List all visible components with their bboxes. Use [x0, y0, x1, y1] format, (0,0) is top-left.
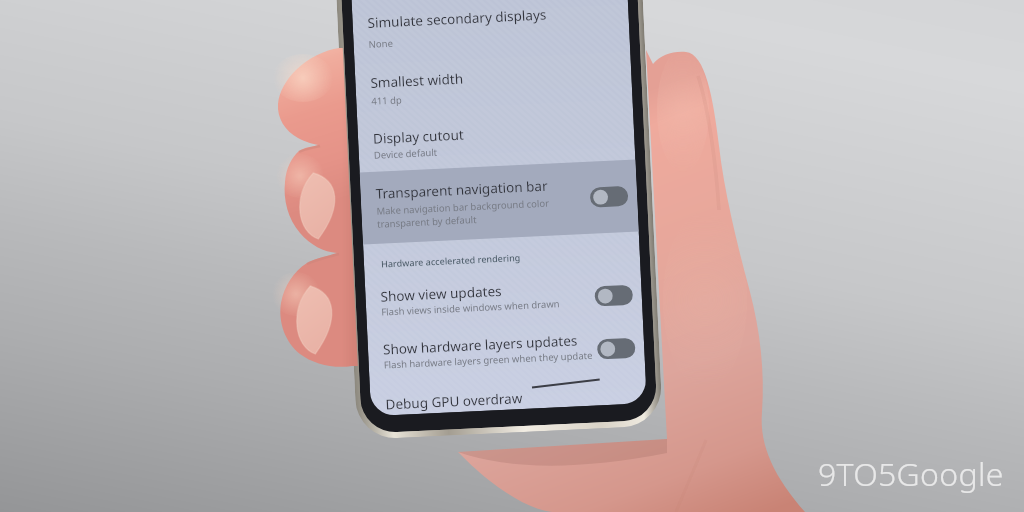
staticText: Show hardware layers updates	[383, 331, 578, 359]
button[interactable]: Simulate secondary displays	[367, 3, 547, 34]
button[interactable]: Toggle	[590, 186, 628, 208]
staticText: Device default	[374, 146, 438, 162]
staticText: Flash views inside windows when drawn	[381, 297, 560, 319]
staticText: Debug GPU overdraw	[385, 389, 523, 413]
staticText: Simulate secondary displays	[367, 5, 547, 32]
button[interactable]: Smallest width	[370, 67, 464, 94]
button[interactable]: Display cutout	[373, 123, 464, 150]
staticText: Make navigation bar background color	[376, 197, 550, 218]
staticText: Display cutout	[373, 125, 464, 148]
staticText: Flash hardware layers green when they up…	[383, 349, 593, 371]
staticText: 411 dp	[371, 93, 403, 108]
button[interactable]: Toggle	[597, 338, 636, 359]
button[interactable]: Show hardware layers updates	[382, 329, 578, 361]
button[interactable]: Debug GPU overdraw	[385, 387, 523, 415]
staticText: Show view updates	[380, 282, 503, 306]
staticText: 9TO5Google	[818, 452, 1004, 496]
button[interactable]: Toggle	[594, 285, 633, 307]
button[interactable]: Transparent navigation bar	[375, 175, 549, 205]
button[interactable]: Show view updates	[380, 280, 503, 308]
staticText: None	[368, 37, 394, 51]
staticText: Hardware accelerated rendering	[381, 251, 521, 270]
staticText: transparent by default	[377, 213, 477, 231]
staticText: Transparent navigation bar	[375, 177, 549, 203]
staticText: Smallest width	[370, 69, 464, 92]
